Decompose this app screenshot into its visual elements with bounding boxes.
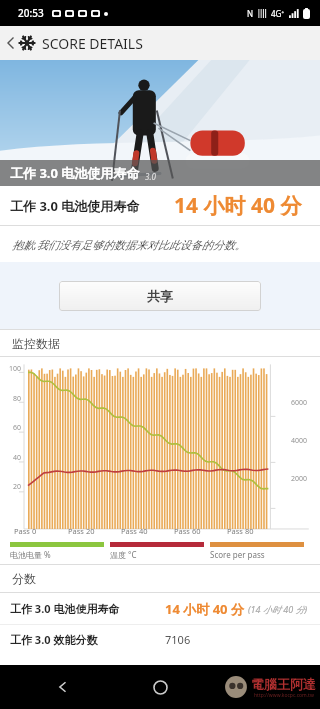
staticText: 14 小时 40 分 xyxy=(174,191,302,220)
staticText: Pass 80 xyxy=(227,526,280,536)
staticText: 工作 3.0 效能分数 xyxy=(10,632,165,647)
staticText: SCORE DETAILS xyxy=(42,34,143,53)
staticText: 分数 xyxy=(12,571,36,586)
staticText: 监控数据 xyxy=(12,336,60,351)
staticText: Pass 60 xyxy=(174,526,227,536)
staticText: 6000 xyxy=(291,398,308,408)
staticText: 工作 3.0 电池使用寿命 xyxy=(10,601,165,616)
staticText: Pass 0 xyxy=(14,526,68,536)
staticText: 2000 xyxy=(291,474,308,484)
staticText: 40 xyxy=(3,453,21,463)
staticText: 100 xyxy=(3,364,21,374)
staticText: 80 xyxy=(3,394,21,404)
button[interactable]: Back xyxy=(0,26,320,60)
button[interactable]: 共享 xyxy=(59,281,261,311)
staticText: (14 小时 40 分) xyxy=(248,603,308,615)
staticText: 共享 xyxy=(147,288,173,304)
staticText: 電腦王阿達 xyxy=(251,676,316,692)
button[interactable]: Back xyxy=(48,672,78,702)
staticText: N xyxy=(247,8,254,19)
staticText: Pass 20 xyxy=(68,526,121,536)
button[interactable]: 工作 3.0 电池使用寿命 xyxy=(0,593,320,624)
staticText: 4G⁺ xyxy=(271,8,285,19)
staticText: 20 xyxy=(3,482,21,492)
staticText: 工作 3.0 电池使用寿命 xyxy=(10,197,140,215)
button[interactable]: 工作 3.0 效能分数 xyxy=(0,625,320,654)
staticText: 4000 xyxy=(291,436,308,446)
staticText: Score per pass xyxy=(210,549,265,560)
staticText: 抱歉,我们没有足够的数据来对比此设备的分数。 xyxy=(12,237,246,252)
staticText: http://www.kocpc.com.tw xyxy=(254,692,314,699)
staticText: 工作 3.0 电池使用寿命 xyxy=(10,164,140,182)
button[interactable]: Home xyxy=(145,672,175,702)
staticText: 3.0 xyxy=(145,171,156,182)
staticText: Pass 40 xyxy=(121,526,174,536)
staticText: 14 小时 40 分 xyxy=(165,600,244,618)
other: Back xyxy=(6,34,16,52)
staticText: 电池电量 % xyxy=(10,549,51,560)
staticText: 20:53 xyxy=(18,6,44,20)
staticText: 温度 °C xyxy=(110,549,137,560)
staticText: 7106 xyxy=(165,632,191,647)
staticText: 60 xyxy=(3,423,21,433)
